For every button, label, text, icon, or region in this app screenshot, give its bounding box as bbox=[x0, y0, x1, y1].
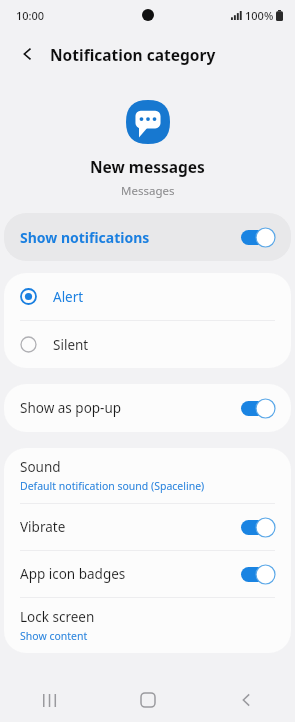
button[interactable]: Lock screen bbox=[4, 598, 291, 653]
staticText: Alert bbox=[53, 288, 84, 306]
button[interactable]: Back bbox=[197, 678, 295, 722]
button[interactable]: Show as pop-up bbox=[4, 384, 291, 432]
staticText: Vibrate bbox=[20, 518, 241, 536]
staticText: App icon badges bbox=[20, 565, 241, 583]
button[interactable]: Sound bbox=[4, 448, 291, 503]
staticText: Show content bbox=[20, 629, 88, 643]
staticText: 100% bbox=[245, 8, 274, 23]
staticText: Show notifications bbox=[20, 228, 241, 247]
staticText: 10:00 bbox=[16, 8, 45, 23]
button[interactable]: Recents bbox=[0, 678, 99, 722]
staticText: Silent bbox=[53, 336, 89, 354]
button[interactable]: Vibrate bbox=[4, 504, 291, 550]
staticText: Default notification sound (Spaceline) bbox=[20, 479, 205, 493]
button[interactable]: Back bbox=[14, 40, 42, 68]
staticText: Notification category bbox=[50, 44, 216, 65]
staticText: Messages bbox=[121, 183, 175, 199]
staticText: Lock screen bbox=[20, 608, 95, 626]
staticText: Sound bbox=[20, 458, 61, 476]
button[interactable]: Show notifications bbox=[4, 213, 291, 261]
staticText: New messages bbox=[90, 156, 205, 177]
staticText: Show as pop-up bbox=[20, 399, 241, 417]
button[interactable]: App icon badges bbox=[4, 551, 291, 597]
button[interactable]: Silent bbox=[4, 321, 291, 368]
button[interactable]: Alert bbox=[4, 273, 291, 320]
button[interactable]: Home bbox=[99, 678, 197, 722]
